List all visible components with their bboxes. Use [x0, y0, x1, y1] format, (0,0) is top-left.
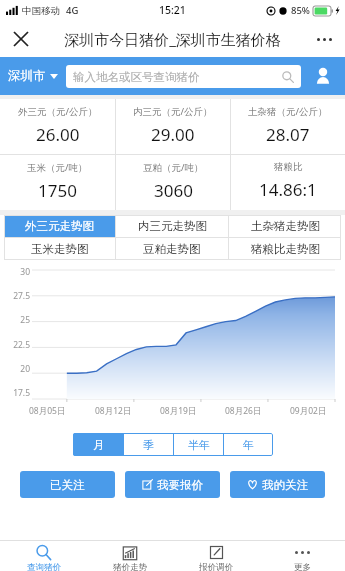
button[interactable]: 内三元走势图 — [116, 215, 228, 237]
button[interactable]: 深圳市 — [8, 68, 58, 84]
staticText: 查询猪价 — [27, 562, 61, 571]
staticText: 20 — [20, 363, 30, 375]
button[interactable]: 月 — [73, 433, 123, 456]
staticText: 29.00 — [151, 123, 195, 146]
staticText: 26.00 — [36, 123, 80, 146]
staticText: 月 — [93, 438, 104, 452]
staticText: 30 — [20, 266, 30, 278]
button[interactable]: 土杂猪走势图 — [229, 215, 341, 237]
button[interactable]: 年 — [224, 433, 273, 456]
button[interactable]: 输入地名或区号查询猪价 — [66, 65, 301, 88]
button[interactable]: More options — [309, 24, 339, 54]
button[interactable]: 我要报价 — [125, 471, 220, 498]
button[interactable]: 已关注 — [20, 471, 115, 498]
staticText: 外三元走势图 — [25, 219, 94, 233]
staticText: 我要报价 — [157, 478, 203, 492]
staticText: 已关注 — [50, 478, 85, 492]
staticText: 15:21 — [159, 3, 186, 17]
button[interactable]: 更多 — [259, 541, 345, 571]
staticText: 豆粕（元/吨） — [143, 161, 204, 174]
button[interactable]: 报价调价 — [173, 541, 259, 571]
staticText: 猪粮比 — [274, 161, 303, 173]
staticText: 我的关注 — [262, 478, 308, 492]
staticText: 半年 — [188, 438, 210, 452]
staticText: 输入地名或区号查询猪价 — [73, 70, 200, 84]
staticText: 4G — [66, 4, 79, 17]
staticText: 27.5 — [13, 290, 30, 302]
button[interactable]: 季 — [124, 433, 173, 456]
button[interactable]: 豆粕走势图 — [116, 238, 228, 260]
button[interactable]: 我的关注 — [230, 471, 325, 498]
button[interactable]: Close — [6, 24, 36, 54]
staticText: 猪粮比走势图 — [251, 242, 320, 256]
staticText: 85% — [291, 4, 310, 17]
staticText: 深圳市今日猪价_深圳市生猪价格 — [64, 29, 281, 49]
staticText: 猪价走势 — [113, 562, 147, 571]
staticText: 17.5 — [13, 387, 30, 399]
staticText: 中国移动 — [22, 5, 60, 17]
button[interactable]: 半年 — [174, 433, 223, 456]
staticText: 08月19日 — [160, 405, 197, 417]
staticText: 14.86:1 — [259, 178, 317, 201]
staticText: 内三元（元/公斤） — [133, 105, 213, 118]
staticText: 年 — [243, 438, 254, 452]
staticText: 玉米（元/吨） — [27, 161, 88, 174]
staticText: 玉米走势图 — [31, 242, 89, 256]
staticText: 1750 — [38, 179, 77, 202]
staticText: 深圳市 — [8, 68, 46, 84]
staticText: 28.07 — [266, 123, 310, 146]
staticText: 08月05日 — [29, 405, 66, 417]
staticText: 土杂猪（元/公斤） — [248, 105, 328, 118]
button[interactable]: 外三元走势图 — [4, 215, 115, 237]
staticText: 22.5 — [13, 339, 30, 351]
staticText: 09月02日 — [290, 405, 327, 417]
staticText: 更多 — [294, 562, 311, 571]
staticText: 报价调价 — [199, 562, 233, 571]
staticText: 豆粕走势图 — [143, 242, 201, 256]
button[interactable]: 查询猪价 — [0, 541, 87, 571]
button[interactable]: 猪粮比走势图 — [229, 238, 341, 260]
staticText: 3060 — [154, 179, 193, 202]
staticText: 内三元走势图 — [138, 219, 207, 233]
staticText: 外三元（元/公斤） — [18, 105, 98, 118]
staticText: 08月12日 — [95, 405, 132, 417]
staticText: 土杂猪走势图 — [251, 219, 320, 233]
button[interactable]: 猪价走势 — [87, 541, 173, 571]
staticText: 季 — [143, 438, 154, 452]
staticText: 25 — [20, 314, 30, 326]
staticText: 08月26日 — [225, 405, 262, 417]
button[interactable]: 玉米走势图 — [4, 238, 115, 260]
button[interactable]: Profile — [309, 62, 337, 90]
